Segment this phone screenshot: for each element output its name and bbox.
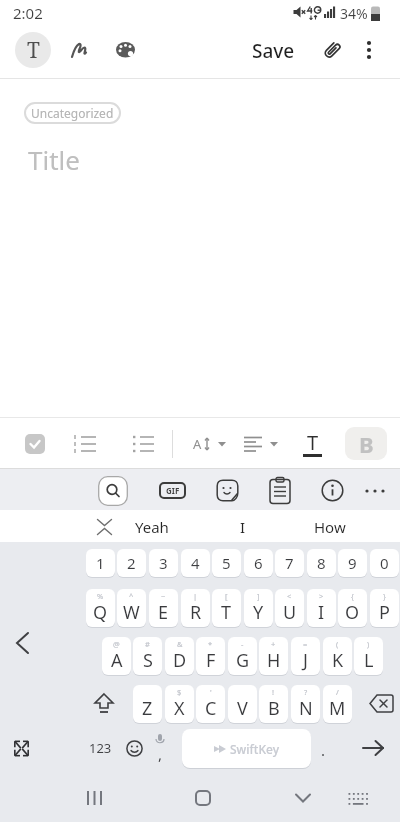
staticText: H [267,648,281,673]
staticText: B [268,696,280,721]
staticText: 8 [317,553,326,573]
staticText: B [359,429,374,459]
staticText: 9 [348,553,357,573]
staticText: 4 [191,553,200,573]
staticText: O [345,600,360,625]
staticText: % [97,591,104,601]
staticText: I [240,517,246,537]
staticText: $ [177,687,182,697]
staticText: # [145,639,150,649]
staticText: GIF [166,485,180,496]
staticText: Save [252,38,295,62]
staticText: SwiftKey [230,741,279,757]
staticText: Yeah [135,517,169,537]
staticText: Uncategorized [31,105,114,121]
staticText: ] [257,591,260,601]
staticText: L [364,648,374,673]
staticText: G [236,648,250,673]
staticText: Title [28,142,80,174]
staticText: ) [367,639,370,649]
staticText: . [321,740,326,760]
staticText: J [303,648,308,673]
staticText: M [329,696,346,721]
staticText: - [241,639,244,649]
staticText: } [383,591,386,601]
staticText: 5 [222,553,231,573]
staticText: ~ [161,591,166,601]
staticText: V [237,696,248,721]
staticText: F [206,648,216,673]
staticText: { [351,591,354,601]
staticText: Q [93,600,108,625]
staticText: [ [225,591,228,601]
staticText: | [193,591,198,601]
staticText: T [27,36,40,65]
staticText: 0 [380,553,389,573]
staticText: U [283,600,297,625]
staticText: How [314,517,346,537]
staticText: T [221,600,232,625]
staticText: > [319,591,324,601]
staticText: D [173,648,187,673]
staticText: ! [272,687,275,697]
staticText: ( [336,639,339,649]
staticText: K [332,648,344,673]
staticText: * [208,639,213,649]
staticText: 123 [89,739,112,757]
staticText: @ [113,639,120,649]
staticText: W [123,600,140,625]
staticText: , [158,744,163,762]
staticText: 7 [285,553,294,573]
staticText: E [158,600,169,625]
staticText: / [336,687,339,697]
staticText: ^ [129,591,134,601]
staticText: N [299,696,313,721]
staticText: 34% [340,4,368,22]
staticText: 2 [127,553,136,573]
staticText: I [318,600,325,625]
staticText: S [143,648,153,673]
staticText: < [287,591,292,601]
staticText: X [174,696,185,721]
staticText: = [303,639,308,649]
staticText: Y [253,600,264,625]
staticText: & [177,639,183,649]
staticText: ? [304,687,308,697]
staticText: 6 [254,553,263,573]
staticText: + [271,639,276,649]
staticText: A [111,648,123,673]
staticText: Z [142,696,153,721]
staticText: P [379,600,390,625]
staticText: 1 [96,553,105,573]
staticText: 3 [159,553,168,573]
staticText: T [307,429,319,454]
staticText: 2:02 [13,3,43,23]
staticText: ' [210,687,212,697]
staticText: A [193,435,202,453]
staticText: R [190,600,202,625]
staticText: C [205,696,217,721]
